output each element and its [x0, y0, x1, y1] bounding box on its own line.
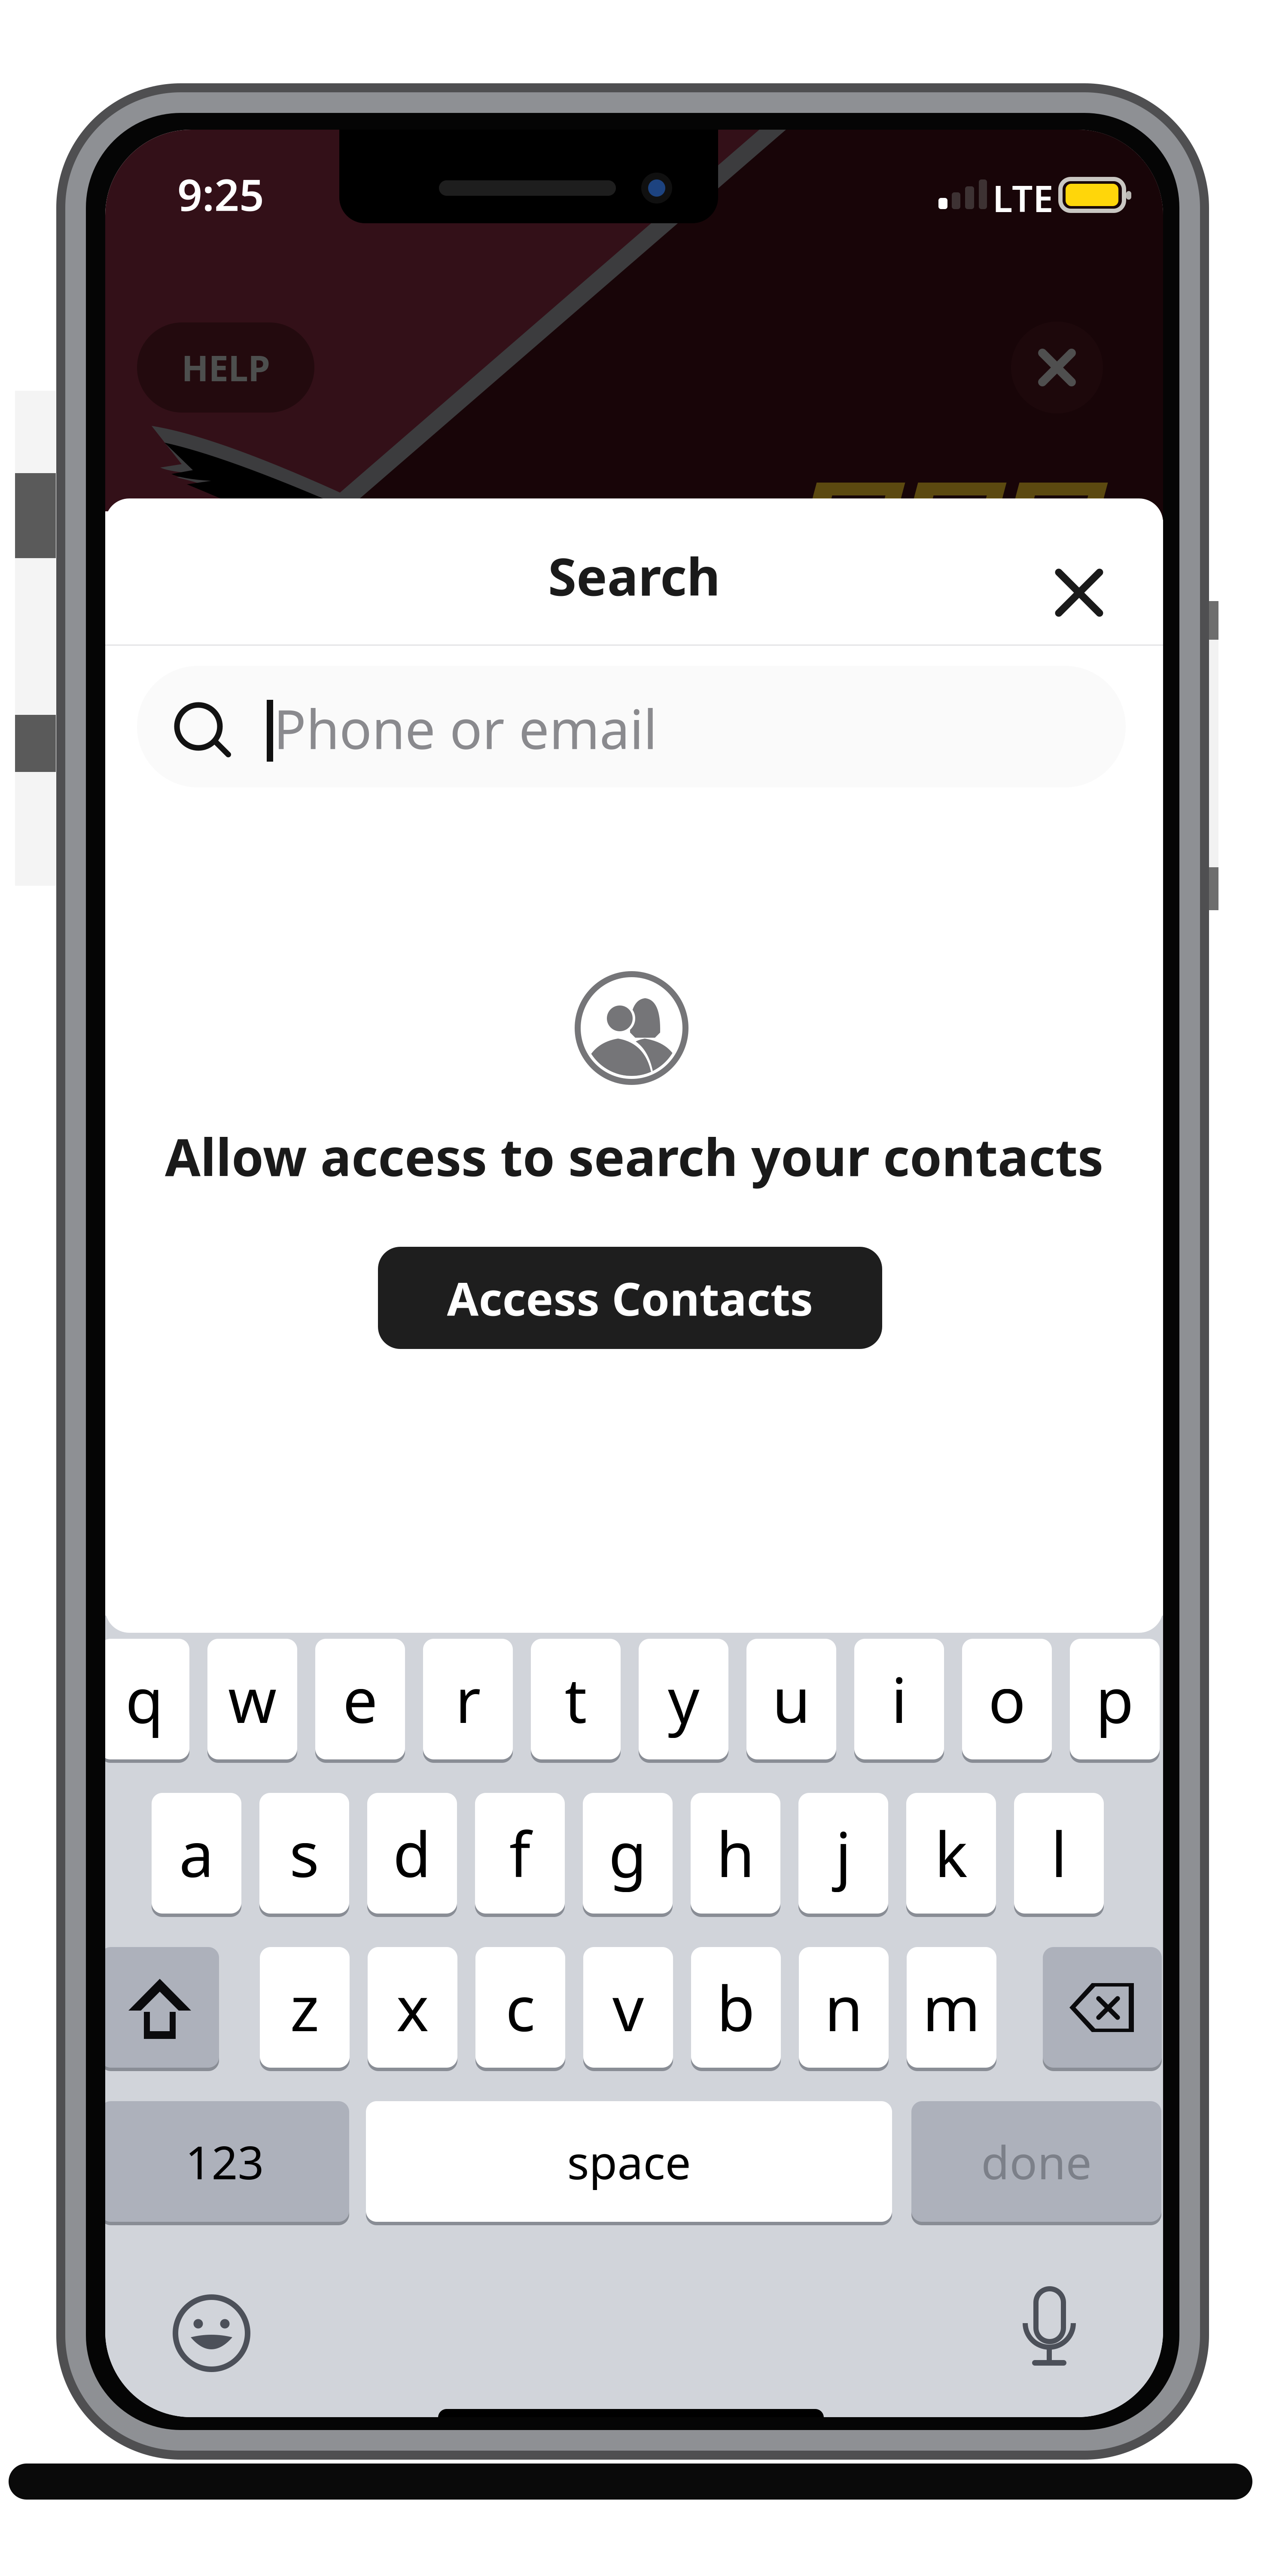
button[interactable]: q — [100, 1639, 189, 1763]
staticText: j — [835, 1812, 851, 1894]
staticText: r — [455, 1658, 481, 1740]
button[interactable]: t — [531, 1639, 621, 1763]
staticText: Phone or email — [274, 692, 657, 764]
button[interactable]: s — [259, 1793, 349, 1917]
button[interactable]: u — [746, 1639, 836, 1763]
button[interactable]: Emoji keyboard — [173, 2294, 250, 2372]
button[interactable]: space — [366, 2101, 892, 2225]
button[interactable]: Shift — [100, 1947, 219, 2071]
button[interactable]: Delete — [1043, 1947, 1162, 2071]
button[interactable]: n — [799, 1947, 889, 2071]
button[interactable]: i — [854, 1639, 944, 1763]
button[interactable]: y — [639, 1639, 728, 1763]
staticText: x — [396, 1966, 429, 2048]
staticText: h — [716, 1812, 755, 1894]
button[interactable]: Close — [1033, 547, 1125, 639]
button[interactable]: z — [260, 1947, 350, 2071]
staticText: e — [343, 1658, 378, 1740]
button[interactable]: x — [368, 1947, 457, 2071]
staticText: n — [825, 1966, 863, 2048]
button[interactable]: 123 — [100, 2101, 349, 2225]
button[interactable]: Access Contacts — [378, 1247, 882, 1349]
button[interactable]: d — [367, 1793, 457, 1917]
staticText: f — [509, 1812, 531, 1894]
staticText: Allow access to search your contacts — [165, 1122, 1103, 1190]
staticText: 9:25 — [177, 165, 264, 223]
button[interactable]: b — [691, 1947, 781, 2071]
button[interactable]: Dictation — [1023, 2289, 1076, 2369]
button[interactable]: j — [798, 1793, 888, 1917]
button[interactable]: r — [423, 1639, 513, 1763]
staticText: a — [179, 1812, 214, 1894]
button[interactable]: k — [906, 1793, 996, 1917]
staticText: t — [565, 1658, 587, 1740]
button[interactable]: m — [907, 1947, 996, 2071]
button[interactable]: f — [475, 1793, 565, 1917]
staticText: Search — [548, 542, 720, 610]
button[interactable]: v — [583, 1947, 673, 2071]
staticText: m — [923, 1966, 981, 2048]
staticText: d — [393, 1812, 431, 1894]
staticText: u — [772, 1658, 810, 1740]
button[interactable]: p — [1070, 1639, 1160, 1763]
button[interactable]: g — [583, 1793, 673, 1917]
staticText: b — [717, 1966, 755, 2048]
button[interactable]: w — [207, 1639, 297, 1763]
staticText: 123 — [185, 2131, 264, 2192]
button[interactable]: o — [962, 1639, 1052, 1763]
button[interactable]: HELP — [137, 322, 314, 413]
staticText: l — [1051, 1812, 1067, 1894]
staticText: p — [1096, 1658, 1134, 1740]
button[interactable]: c — [475, 1947, 565, 2071]
button[interactable]: Close — [1011, 322, 1103, 413]
staticText: Access Contacts — [447, 1267, 813, 1328]
button[interactable]: done — [911, 2101, 1161, 2225]
button[interactable]: h — [691, 1793, 780, 1917]
staticText: space — [567, 2131, 691, 2192]
staticText: q — [125, 1658, 164, 1740]
staticText: i — [891, 1658, 907, 1740]
staticText: z — [290, 1966, 319, 2048]
button[interactable]: a — [152, 1793, 241, 1917]
staticText: w — [228, 1658, 277, 1740]
staticText: HELP — [181, 344, 270, 391]
button[interactable]: l — [1014, 1793, 1104, 1917]
staticText: o — [988, 1658, 1026, 1740]
staticText: v — [612, 1966, 644, 2048]
staticText: g — [609, 1812, 647, 1894]
staticText: y — [668, 1658, 699, 1740]
staticText: k — [935, 1812, 968, 1894]
staticText: s — [289, 1812, 319, 1894]
staticText: done — [981, 2131, 1092, 2192]
staticText: LTE — [993, 174, 1054, 222]
staticText: c — [506, 1966, 535, 2048]
button[interactable]: e — [315, 1639, 405, 1763]
